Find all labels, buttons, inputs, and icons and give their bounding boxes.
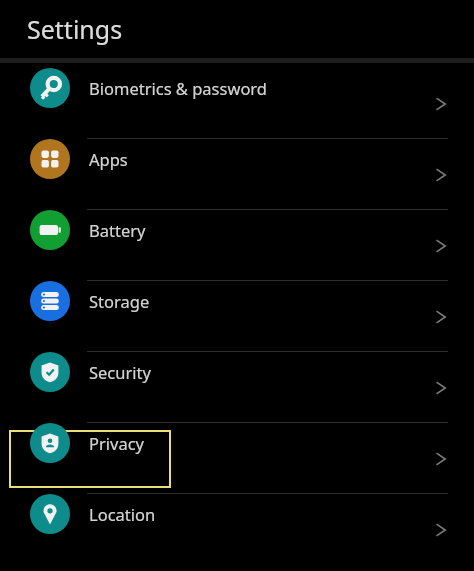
button[interactable]: Security — [0, 352, 474, 423]
button[interactable]: Privacy — [0, 423, 474, 494]
staticText: Location — [89, 503, 156, 525]
button[interactable]: Location — [0, 494, 474, 565]
button[interactable]: Biometrics & password — [0, 68, 474, 139]
staticText: Apps — [89, 148, 128, 170]
staticText: Security — [89, 361, 151, 383]
button[interactable]: Battery — [0, 210, 474, 281]
staticText: Biometrics & password — [89, 77, 268, 99]
staticText: Settings — [27, 12, 123, 46]
staticText: Privacy — [89, 432, 145, 454]
button[interactable]: Storage — [0, 281, 474, 352]
staticText: Storage — [89, 290, 150, 312]
button[interactable]: Apps — [0, 139, 474, 210]
staticText: Battery — [89, 219, 146, 241]
